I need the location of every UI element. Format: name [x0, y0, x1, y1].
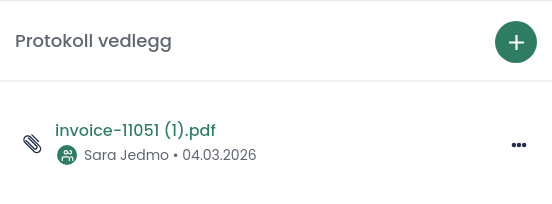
- staticText: Protokoll vedlegg: [15, 28, 172, 53]
- staticText: Sara Jedmo • 04.03.2026: [84, 145, 257, 165]
- button[interactable]: invoice-11051 (1).pdf: [0, 101, 552, 171]
- staticText: invoice-11051 (1).pdf: [55, 119, 216, 141]
- button[interactable]: Flere valg: [503, 129, 535, 161]
- button[interactable]: Legg til vedlegg: [495, 21, 537, 63]
